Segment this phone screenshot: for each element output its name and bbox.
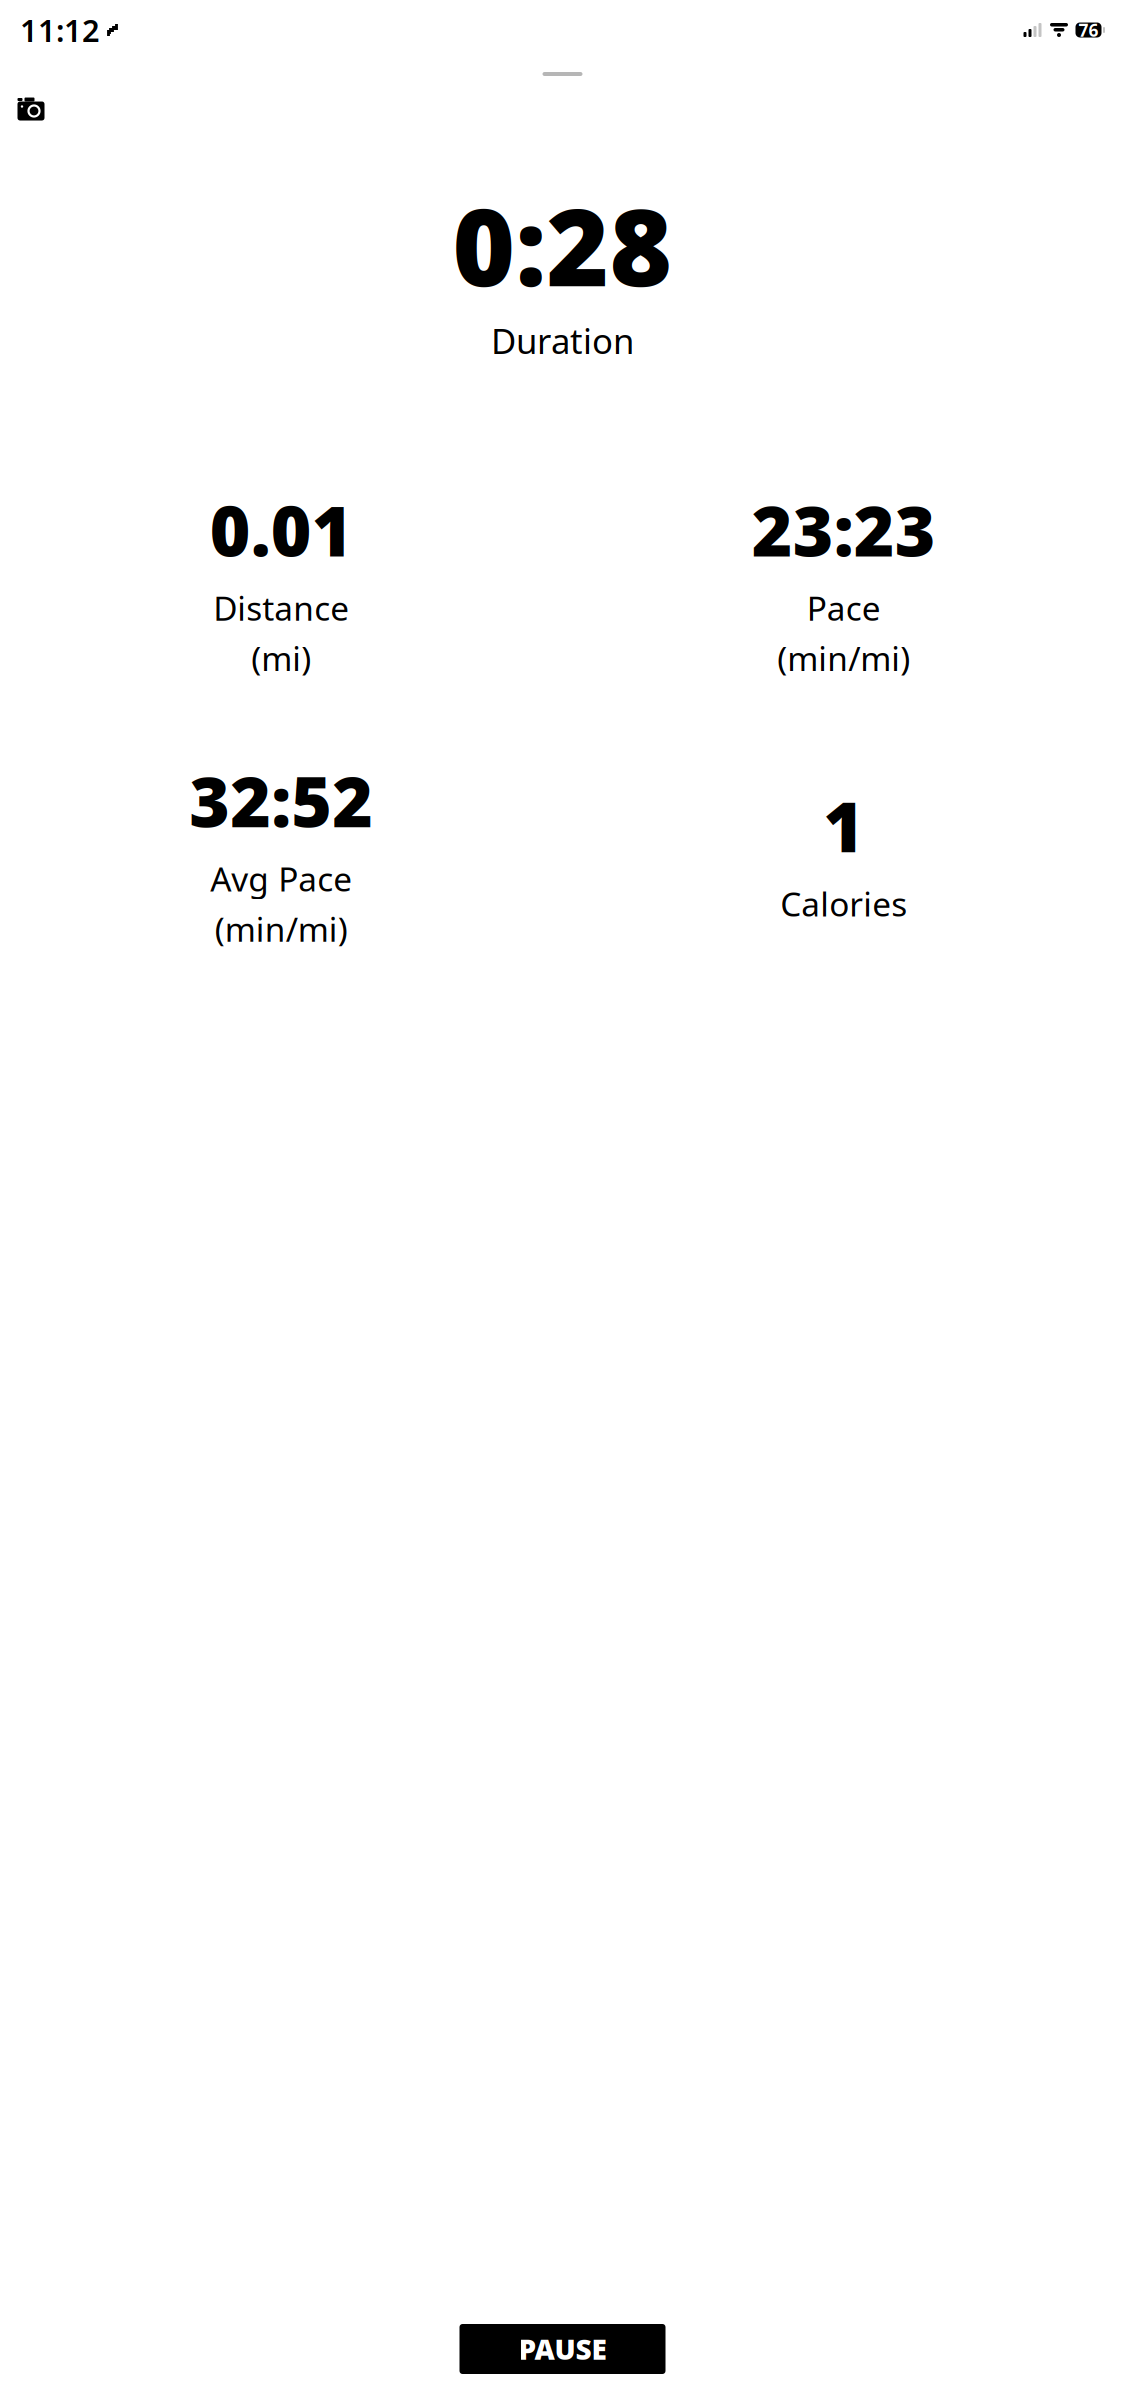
staticText: Distance <box>213 586 349 630</box>
staticText: 32:52 <box>189 754 373 846</box>
staticText: 1 <box>823 779 864 871</box>
staticText: 11:12 <box>20 10 100 50</box>
staticText: Duration <box>491 318 634 364</box>
staticText: (min/mi) <box>777 636 910 680</box>
staticText: 23:23 <box>752 484 936 576</box>
staticText: 0.01 <box>210 484 353 576</box>
staticText: PAUSE <box>518 2330 606 2368</box>
button[interactable]: Camera <box>16 96 46 122</box>
staticText: (mi) <box>251 636 311 680</box>
staticText: Pace <box>807 586 881 630</box>
staticText: Calories <box>780 881 907 926</box>
button[interactable]: PAUSE <box>459 2324 665 2374</box>
staticText: Avg Pace <box>210 856 352 901</box>
staticText: (min/mi) <box>215 907 348 951</box>
staticText: 0:28 <box>452 174 672 316</box>
staticText: 76 <box>1078 18 1098 41</box>
